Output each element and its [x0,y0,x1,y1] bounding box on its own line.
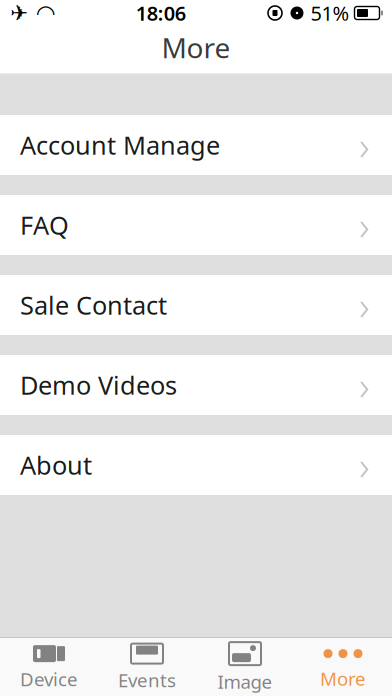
staticText: › [359,198,370,251]
staticText: › [359,118,370,171]
staticText: › [359,358,370,411]
staticText: Demo Videos [20,368,177,402]
staticText: › [359,278,370,331]
button[interactable]: Device [0,637,98,696]
staticText: ◠ [37,0,54,26]
staticText: 18:06 [136,0,186,26]
button[interactable]: More [294,637,392,696]
staticText: Sale Contact [20,288,167,322]
staticText: About [20,448,92,482]
button[interactable]: Account Manage [0,115,392,175]
staticText: 51% [310,0,349,26]
staticText: › [359,438,370,491]
button[interactable]: Demo Videos [0,355,392,415]
staticText: Events [118,668,176,692]
staticText: Image [217,669,272,694]
button[interactable]: FAQ [0,195,392,255]
button[interactable]: Sale Contact [0,275,392,335]
staticText: Account Manage [20,128,220,162]
staticText: ✈ [10,1,28,25]
staticText: More [320,666,366,691]
button[interactable]: About [0,435,392,495]
staticText: More [161,29,230,66]
staticText: Device [20,667,78,691]
button[interactable]: Events [98,637,196,696]
staticText: FAQ [20,208,69,242]
button[interactable]: Image [196,637,294,696]
